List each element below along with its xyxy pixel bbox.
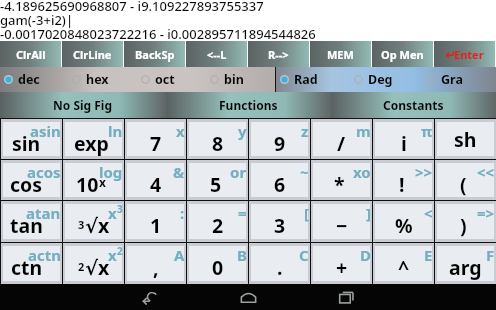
staticText: BackSp: [135, 47, 175, 62]
staticText: 3: [78, 217, 85, 232]
button[interactable]: oct: [137, 67, 206, 92]
staticText: 4: [150, 171, 162, 198]
staticText: .: [277, 254, 283, 281]
staticText: atan: [26, 203, 61, 223]
button[interactable]: x: [63, 243, 124, 284]
staticText: or: [230, 162, 247, 182]
staticText: 1: [150, 212, 162, 239]
button[interactable]: F: [435, 243, 496, 284]
staticText: %: [395, 212, 413, 239]
button[interactable]: π: [373, 119, 434, 159]
button[interactable]: Functions: [166, 92, 331, 118]
button[interactable]: <--L: [186, 41, 247, 67]
staticText: actn: [28, 245, 61, 265]
button[interactable]: Recents: [322, 284, 370, 310]
staticText: -0.0017020848023722216 - i0.002895711894…: [0, 25, 316, 38]
button[interactable]: &: [125, 160, 186, 200]
button[interactable]: ]: [311, 201, 372, 242]
button[interactable]: or: [187, 160, 248, 200]
staticText: ClrLine: [73, 47, 112, 62]
staticText: 10: [76, 171, 99, 198]
button[interactable]: Enter: [434, 41, 495, 67]
button[interactable]: x: [63, 201, 124, 242]
button[interactable]: sh: [435, 119, 496, 159]
button[interactable]: R-->: [248, 41, 309, 67]
staticText: exp: [74, 130, 109, 157]
button[interactable]: y: [187, 119, 248, 159]
button[interactable]: <: [373, 201, 434, 242]
staticText: y: [238, 121, 247, 141]
button[interactable]: acos: [1, 160, 62, 200]
staticText: <<: [477, 162, 495, 182]
staticText: x: [176, 121, 185, 141]
staticText: 5: [210, 171, 222, 198]
staticText: =: [238, 203, 247, 223]
button[interactable]: hex: [68, 67, 137, 92]
button[interactable]: BackSp: [124, 41, 185, 67]
staticText: MEM: [327, 47, 354, 62]
staticText: ln: [108, 121, 123, 141]
button[interactable]: E: [373, 243, 434, 284]
button[interactable]: log: [63, 160, 124, 200]
staticText: C: [299, 245, 309, 265]
button[interactable]: <<: [435, 160, 496, 200]
staticText: 3: [274, 212, 286, 239]
button[interactable]: Back: [126, 284, 174, 310]
staticText: cos: [10, 171, 43, 198]
staticText: Rad: [294, 71, 318, 88]
button[interactable]: Home: [224, 284, 272, 310]
button[interactable]: x: [125, 119, 186, 159]
staticText: −: [336, 212, 348, 239]
button[interactable]: dec: [0, 67, 68, 92]
button[interactable]: =: [187, 201, 248, 242]
button[interactable]: >>: [373, 160, 434, 200]
staticText: acos: [27, 162, 61, 182]
button[interactable]: ln: [63, 119, 124, 159]
button[interactable]: No Sig Fig: [0, 92, 166, 118]
button[interactable]: atan: [1, 201, 62, 242]
staticText: 3: [117, 202, 123, 216]
staticText: =>: [477, 203, 495, 223]
staticText: asin: [30, 121, 61, 141]
button[interactable]: C: [249, 243, 310, 284]
button[interactable]: Deg: [350, 67, 423, 92]
staticText: x: [99, 174, 106, 190]
staticText: hex: [86, 71, 109, 88]
button[interactable]: ClrAll: [0, 41, 61, 67]
button[interactable]: Rad: [276, 67, 350, 92]
button[interactable]: ClrLine: [62, 41, 123, 67]
button[interactable]: Constants: [331, 92, 496, 118]
staticText: /: [337, 130, 346, 157]
staticText: F: [486, 245, 495, 265]
staticText: Enter: [454, 47, 484, 62]
button[interactable]: MEM: [310, 41, 371, 67]
staticText: ctn: [11, 254, 43, 281]
button[interactable]: A: [125, 243, 186, 284]
staticText: Op Men: [381, 47, 424, 62]
button[interactable]: [: [249, 201, 310, 242]
button[interactable]: Gra: [423, 67, 496, 92]
button[interactable]: xo: [311, 160, 372, 200]
button[interactable]: =>: [435, 201, 496, 242]
button[interactable]: D: [311, 243, 372, 284]
button[interactable]: asin: [1, 119, 62, 159]
staticText: Deg: [368, 71, 393, 88]
staticText: 2: [212, 212, 224, 239]
button[interactable]: Op Men: [372, 41, 433, 67]
button[interactable]: m: [311, 119, 372, 159]
staticText: -4.189625690968807 - i9.109227893755337: [0, 0, 264, 11]
staticText: +: [336, 254, 348, 281]
button[interactable]: ~: [249, 160, 310, 200]
button[interactable]: z: [249, 119, 310, 159]
staticText: m: [356, 121, 371, 141]
button[interactable]: :: [125, 201, 186, 242]
button[interactable]: actn: [1, 243, 62, 284]
staticText: *: [334, 171, 345, 198]
staticText: π: [421, 121, 433, 141]
button[interactable]: bin: [206, 67, 275, 92]
button[interactable]: B: [187, 243, 248, 284]
staticText: ~: [300, 162, 309, 182]
staticText: √x: [85, 212, 110, 239]
staticText: E: [424, 245, 433, 265]
staticText: 7: [150, 130, 162, 157]
